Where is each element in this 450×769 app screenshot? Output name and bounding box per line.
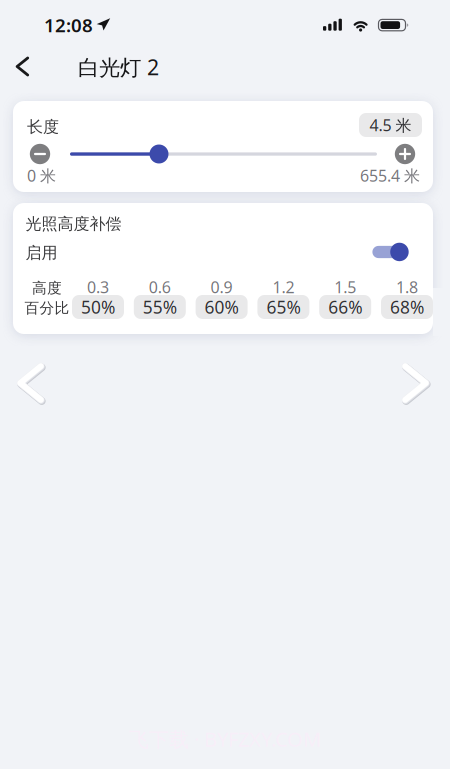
staticText: 1.5 xyxy=(334,276,356,298)
staticText: 0.6 xyxy=(149,276,171,298)
staticText: 百分比 xyxy=(24,299,69,317)
button[interactable]: 减少 xyxy=(27,141,53,167)
staticText: 1.8 xyxy=(396,276,418,298)
staticText: 68% xyxy=(390,295,424,318)
staticText: 60% xyxy=(205,295,239,318)
staticText: 0.3 xyxy=(87,276,109,298)
button[interactable]: 50% xyxy=(72,295,124,319)
staticText: 光照高度补偿 xyxy=(25,214,121,234)
staticText: 4.5 米 xyxy=(369,114,411,136)
staticText: 50% xyxy=(81,295,115,318)
staticText: 白光灯 2 xyxy=(78,53,159,81)
staticText: 1.2 xyxy=(272,276,294,298)
staticText: 12:08 xyxy=(44,13,93,37)
button[interactable]: 下一页 xyxy=(402,363,429,403)
button[interactable]: 60% xyxy=(196,295,248,319)
button[interactable]: 55% xyxy=(134,295,186,319)
staticText: 65% xyxy=(266,295,300,318)
button[interactable]: 68% xyxy=(381,295,433,319)
staticText: 66% xyxy=(328,295,362,318)
button[interactable]: 启用 xyxy=(372,239,416,265)
staticText: 高度 xyxy=(32,279,62,297)
staticText: 长度 xyxy=(27,117,59,137)
button[interactable]: 上一页 xyxy=(17,363,44,403)
staticText: 0 米 xyxy=(27,165,56,186)
staticText: 启用 xyxy=(25,243,57,263)
staticText: 0.9 xyxy=(211,276,233,298)
button[interactable]: 返回 xyxy=(0,44,44,88)
button[interactable]: 65% xyxy=(257,295,309,319)
staticText: 655.4 米 xyxy=(360,165,420,186)
button[interactable]: 66% xyxy=(319,295,371,319)
staticText: 55% xyxy=(143,295,177,318)
button[interactable]: 增加 xyxy=(392,141,418,167)
